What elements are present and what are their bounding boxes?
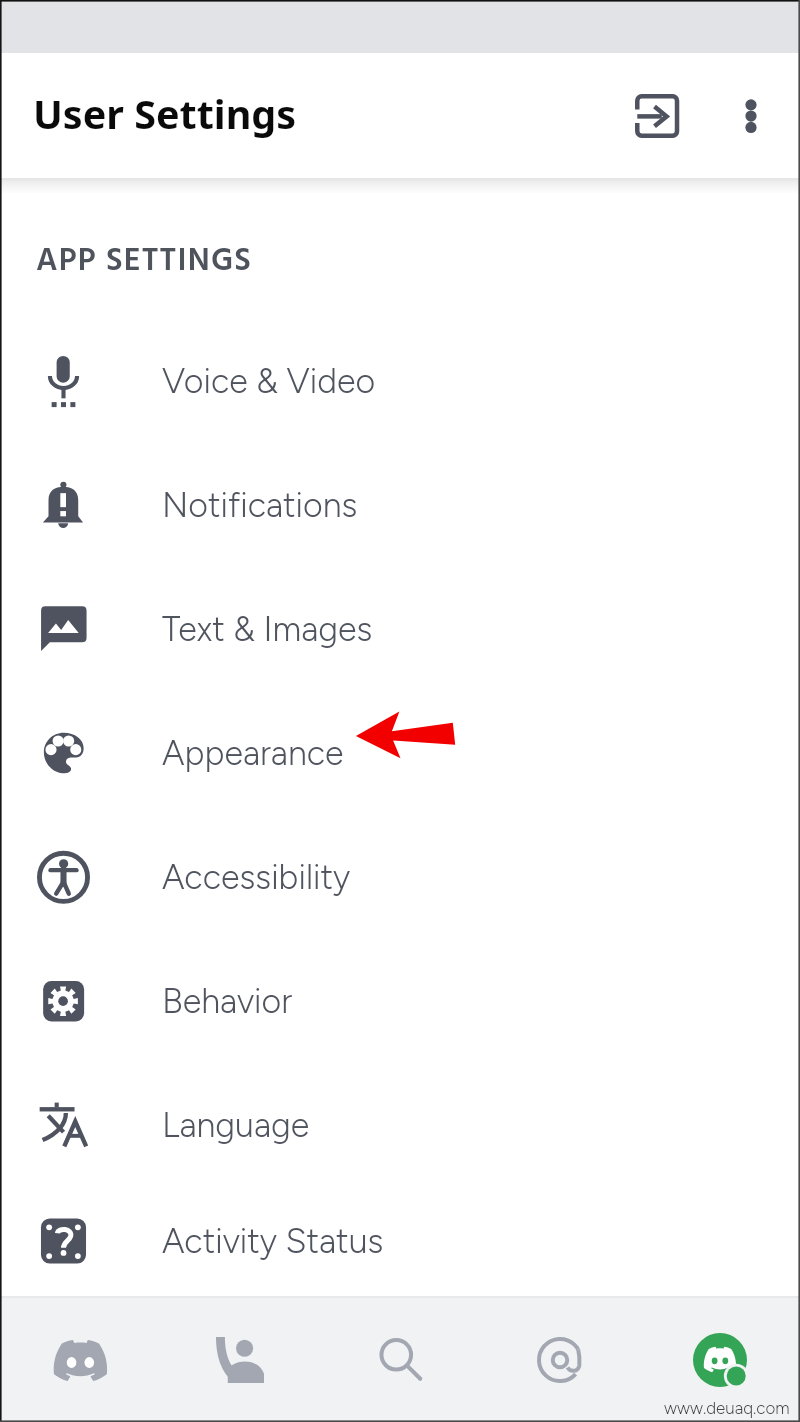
staticText: Accessibility bbox=[162, 857, 351, 898]
button[interactable]: Appearance bbox=[0, 691, 800, 815]
staticText: Language bbox=[162, 1105, 310, 1146]
button[interactable]: Profile bbox=[675, 1315, 765, 1405]
staticText: Voice & Video bbox=[162, 361, 376, 402]
button[interactable]: Notifications bbox=[0, 443, 800, 567]
staticText: Activity Status bbox=[162, 1221, 384, 1262]
button[interactable]: Friends bbox=[195, 1315, 285, 1405]
staticText: User Settings bbox=[33, 87, 297, 141]
button[interactable]: Search bbox=[355, 1315, 445, 1405]
button[interactable]: Home bbox=[35, 1315, 125, 1405]
button[interactable]: Activity Status bbox=[0, 1187, 800, 1296]
button[interactable]: More options bbox=[708, 73, 794, 159]
staticText: www.deuaq.com bbox=[664, 1398, 790, 1418]
staticText: APP SETTINGS bbox=[36, 236, 253, 287]
staticText: Notifications bbox=[162, 485, 358, 526]
button[interactable]: Language bbox=[0, 1063, 800, 1187]
button[interactable]: Behavior bbox=[0, 939, 800, 1063]
staticText: Text & Images bbox=[162, 609, 373, 650]
staticText: Appearance bbox=[162, 733, 344, 774]
button[interactable]: Text & Images bbox=[0, 567, 800, 691]
button[interactable]: Accessibility bbox=[0, 815, 800, 939]
button[interactable]: Mentions bbox=[515, 1315, 605, 1405]
button[interactable]: Voice & Video bbox=[0, 319, 800, 443]
button[interactable]: Log out bbox=[614, 73, 700, 159]
staticText: Behavior bbox=[162, 981, 293, 1022]
